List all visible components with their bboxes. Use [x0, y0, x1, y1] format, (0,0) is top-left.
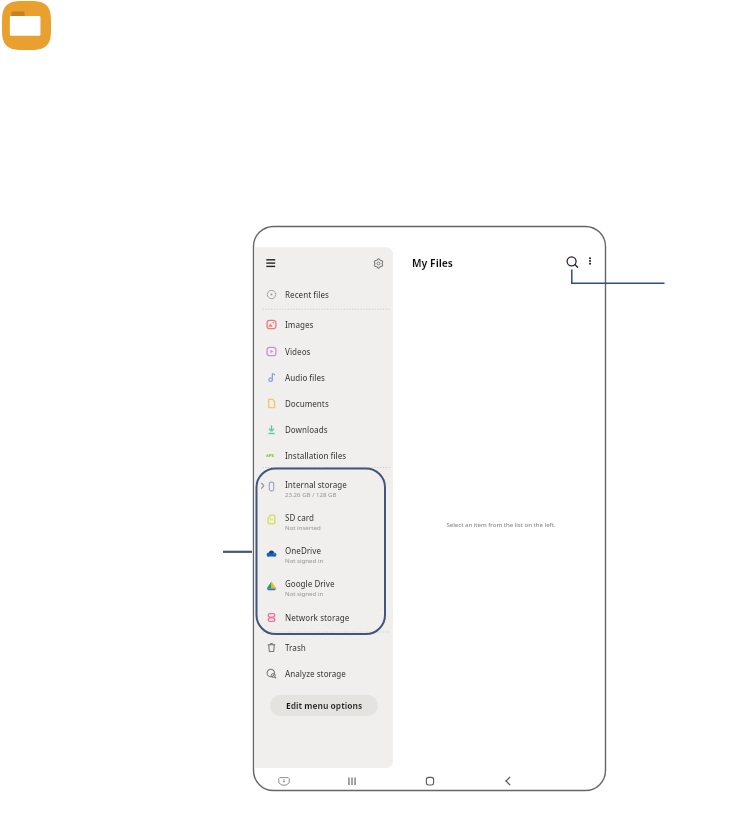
button[interactable]: More options — [584, 255, 596, 267]
button[interactable]: Recent files — [256, 281, 393, 307]
button[interactable]: OneDrive — [256, 539, 393, 569]
button[interactable]: Images — [256, 311, 393, 337]
button[interactable]: Open navigation menu — [262, 255, 279, 272]
staticText: My Files — [412, 256, 453, 270]
button[interactable]: Recent apps — [343, 772, 361, 790]
button[interactable]: Documents — [256, 390, 393, 416]
button[interactable]: SD card — [256, 506, 393, 536]
staticText: Videos — [285, 346, 311, 357]
button[interactable]: My Files — [2, 1, 51, 50]
button[interactable]: Edit menu options — [270, 695, 378, 716]
button[interactable]: Analyze storage — [256, 660, 393, 686]
staticText: Analyze storage — [285, 668, 346, 679]
staticText: Images — [285, 319, 314, 330]
button[interactable]: Trash — [256, 634, 393, 660]
staticText: Not inserted — [285, 523, 321, 531]
staticText: Audio files — [285, 372, 325, 383]
button[interactable]: Internal storage — [256, 473, 393, 503]
staticText: Edit menu options — [286, 700, 363, 711]
button[interactable]: Audio files — [256, 364, 393, 390]
staticText: Internal storage — [285, 479, 347, 490]
staticText: Select an item from the list on the left… — [446, 520, 556, 528]
staticText: Downloads — [285, 424, 328, 435]
staticText: Network storage — [285, 612, 350, 623]
staticText: Not signed in — [285, 556, 324, 564]
button[interactable]: Search — [565, 255, 580, 270]
staticText: Documents — [285, 398, 329, 409]
staticText: Trash — [285, 642, 306, 653]
button[interactable]: Google Drive — [256, 572, 393, 602]
button[interactable]: Back — [499, 772, 517, 790]
button[interactable]: Network storage — [256, 604, 393, 630]
staticText: Not signed in — [285, 589, 324, 597]
staticText: Installation files — [285, 450, 347, 461]
button[interactable]: Settings — [373, 258, 384, 269]
button[interactable]: Hide keyboard — [275, 772, 293, 790]
staticText: SD card — [285, 512, 315, 523]
button[interactable]: Videos — [256, 338, 393, 364]
staticText: Google Drive — [285, 578, 335, 589]
button[interactable]: Home — [421, 772, 439, 790]
staticText: Recent files — [285, 289, 329, 300]
button[interactable]: Downloads — [256, 416, 393, 442]
staticText: 23.26 GB / 128 GB — [285, 490, 337, 498]
staticText: OneDrive — [285, 545, 322, 556]
button[interactable]: Installation files — [256, 442, 393, 468]
